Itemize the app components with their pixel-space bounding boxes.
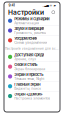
staticText: Экран «Домой» bbox=[14, 92, 42, 96]
staticText: Экран и яркость bbox=[14, 72, 43, 77]
staticText: Доступная среда bbox=[14, 53, 44, 57]
staticText: Режимы и сценарии bbox=[14, 16, 49, 21]
button[interactable]: Режимы и сценарии bbox=[5, 16, 59, 25]
staticText: Настройка элементов bbox=[14, 96, 50, 100]
button[interactable]: Уведомления bbox=[5, 36, 59, 45]
staticText: Тёмная тема, Night bbox=[14, 77, 44, 81]
button[interactable]: Главный экран bbox=[5, 81, 59, 91]
staticText: Звуки и вибрация bbox=[14, 26, 44, 31]
staticText: Главный экран bbox=[14, 82, 40, 87]
button[interactable]: Экран «Домой» bbox=[5, 91, 59, 101]
staticText: Настройки bbox=[8, 8, 44, 16]
staticText: Автоматизация bbox=[14, 21, 39, 25]
staticText: Уведомления bbox=[14, 36, 37, 41]
staticText: Громкость, рингтон bbox=[14, 31, 46, 35]
button[interactable]: Доступная среда bbox=[5, 52, 59, 62]
staticText: Зрение, слух bbox=[14, 57, 36, 61]
staticText: Обои и стиль bbox=[14, 62, 37, 67]
staticText: Схема уведомлений bbox=[14, 41, 47, 45]
staticText: Виджеты, поиск bbox=[14, 87, 41, 91]
button[interactable]: Звуки и вибрация bbox=[5, 26, 59, 35]
button[interactable]: Обои и стиль bbox=[5, 62, 59, 71]
staticText: ▁▃▅ ᯤ ▰ bbox=[42, 3, 55, 7]
staticText: Настройте уведомления для всех приложени… bbox=[5, 47, 59, 50]
button[interactable]: Экран и яркость bbox=[5, 72, 59, 81]
staticText: 9:41 bbox=[8, 3, 14, 7]
button[interactable]: Поиск bbox=[51, 10, 56, 15]
staticText: Экран блокировки bbox=[14, 67, 45, 71]
